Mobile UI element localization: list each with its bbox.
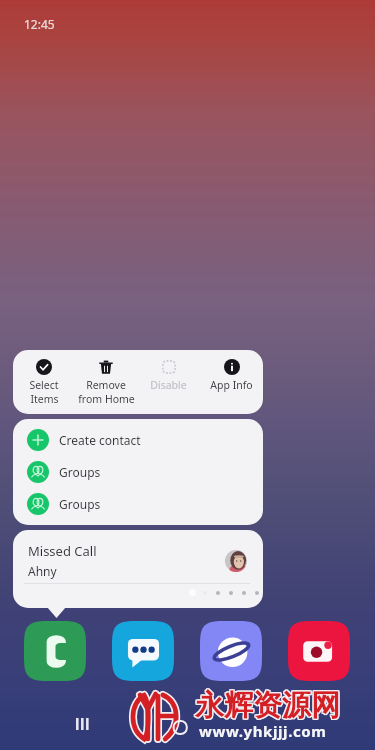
- staticText: from Home: [78, 392, 135, 406]
- staticText: www.yhkjjj.com: [199, 721, 327, 741]
- staticText: 永辉资源网: [195, 687, 340, 724]
- button[interactable]: Groups: [13, 456, 263, 488]
- staticText: 永辉资源网: [194, 687, 339, 724]
- staticText: Remove: [86, 378, 126, 392]
- button[interactable]: App: [200, 621, 262, 681]
- staticText: Select: [29, 378, 59, 392]
- staticText: 永辉资源网: [195, 688, 340, 725]
- staticText: 永辉资源网: [194, 688, 339, 725]
- staticText: 永辉资源网: [194, 686, 339, 723]
- staticText: 12:45: [24, 16, 55, 32]
- button[interactable]: App: [288, 621, 350, 681]
- button[interactable]: App: [112, 621, 174, 681]
- staticText: 永辉资源网: [196, 687, 341, 724]
- staticText: 永辉资源网: [195, 686, 340, 723]
- button[interactable]: Recents: [68, 710, 96, 738]
- button[interactable]: App Info: [200, 350, 263, 392]
- button[interactable]: Disable: [137, 350, 200, 392]
- button[interactable]: Select: [13, 350, 75, 406]
- staticText: 永辉资源网: [196, 688, 341, 725]
- staticText: Missed Call: [28, 542, 97, 560]
- button[interactable]: App: [24, 621, 86, 681]
- staticText: 永辉资源网: [196, 686, 341, 723]
- staticText: Items: [30, 392, 59, 406]
- staticText: Groups: [59, 464, 101, 480]
- staticText: App Info: [210, 378, 253, 392]
- button[interactable]: Remove: [75, 350, 137, 406]
- staticText: Disable: [150, 378, 187, 392]
- button[interactable]: Create contact: [13, 424, 263, 456]
- staticText: Ahny: [28, 563, 57, 579]
- staticText: Groups: [59, 496, 101, 512]
- staticText: Create contact: [59, 432, 141, 448]
- button[interactable]: Groups: [13, 488, 263, 520]
